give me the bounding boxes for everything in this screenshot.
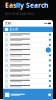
button[interactable] bbox=[3, 48, 53, 53]
staticText: Search bbox=[10, 28, 19, 31]
button[interactable] bbox=[3, 58, 53, 63]
button[interactable] bbox=[3, 42, 53, 48]
button[interactable] bbox=[3, 78, 53, 84]
button[interactable] bbox=[3, 37, 53, 42]
button[interactable] bbox=[3, 32, 53, 37]
staticText: And download music bbox=[5, 12, 34, 15]
button[interactable] bbox=[3, 84, 53, 89]
button[interactable] bbox=[3, 68, 53, 73]
staticText: Easily Search bbox=[5, 1, 48, 10]
button[interactable] bbox=[3, 73, 53, 79]
button[interactable] bbox=[3, 63, 53, 68]
staticText: 9:41 bbox=[5, 22, 12, 25]
button[interactable] bbox=[3, 53, 53, 58]
